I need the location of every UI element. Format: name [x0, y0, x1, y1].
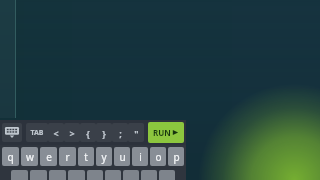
button[interactable]	[87, 170, 103, 180]
button[interactable]: RUN	[148, 122, 184, 143]
staticText: }	[102, 127, 106, 139]
button[interactable]: t	[78, 147, 94, 166]
button[interactable]: e	[40, 147, 57, 166]
button[interactable]	[159, 170, 175, 180]
button[interactable]: "	[128, 123, 144, 142]
staticText: o	[155, 150, 162, 164]
staticText: y	[101, 150, 107, 164]
staticText: <	[53, 127, 59, 139]
button[interactable]: q	[2, 147, 19, 166]
button[interactable]: }	[96, 123, 112, 142]
button[interactable]: {	[80, 123, 96, 142]
button[interactable]: r	[59, 147, 76, 166]
button[interactable]: w	[21, 147, 38, 166]
staticText: p	[173, 150, 180, 164]
button[interactable]: TAB	[26, 123, 48, 142]
button[interactable]: u	[114, 147, 130, 166]
staticText: TAB	[30, 128, 44, 138]
button[interactable]: ;	[112, 123, 128, 142]
button[interactable]	[123, 170, 139, 180]
button[interactable]: o	[150, 147, 166, 166]
button[interactable]	[49, 170, 66, 180]
staticText: u	[119, 150, 126, 164]
button[interactable]	[30, 170, 47, 180]
staticText: w	[26, 150, 34, 164]
staticText: ;	[119, 127, 122, 139]
staticText: {	[86, 127, 90, 139]
button[interactable]: >	[64, 123, 80, 142]
staticText: e	[46, 150, 52, 164]
staticText: >	[69, 127, 75, 139]
staticText: RUN	[153, 127, 171, 138]
button[interactable]: p	[168, 147, 184, 166]
button[interactable]: i	[132, 147, 148, 166]
button[interactable]: <	[48, 123, 64, 142]
button[interactable]	[68, 170, 85, 180]
button[interactable]: y	[96, 147, 112, 166]
button[interactable]	[11, 170, 28, 180]
staticText: r	[65, 150, 70, 164]
button[interactable]	[141, 170, 157, 180]
staticText: "	[134, 127, 139, 139]
button[interactable]	[105, 170, 121, 180]
button[interactable]: Hide keyboard	[2, 123, 22, 142]
staticText: i	[139, 150, 142, 164]
staticText: t	[84, 150, 88, 164]
staticText: q	[7, 150, 14, 164]
